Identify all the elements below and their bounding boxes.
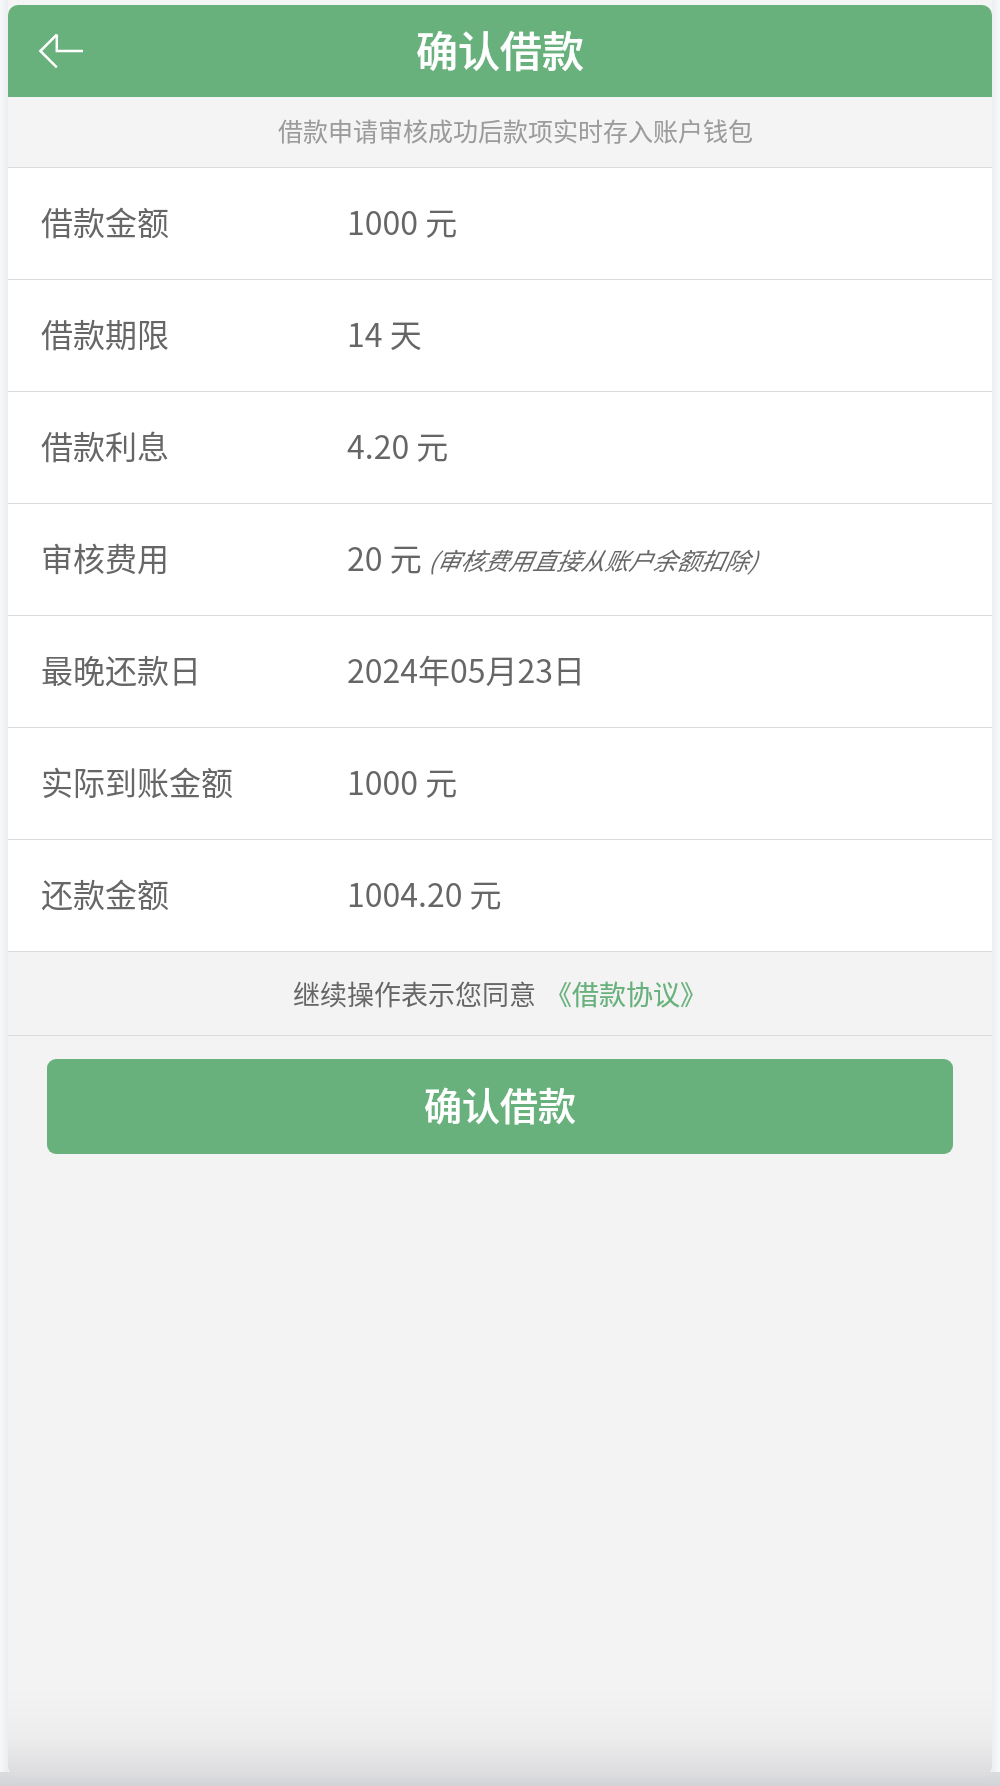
staticText: 继续操作表示您同意 [293,974,536,1013]
staticText: 1000 元 [347,758,458,804]
button[interactable]: 借款利息 [8,392,992,503]
button[interactable]: 实际到账金额 [8,728,992,839]
button[interactable]: 还款金额 [8,840,992,951]
staticText: 1004.20 元 [347,870,502,916]
staticText: 确认借款 [416,18,585,79]
button[interactable]: 审核费用 [8,504,992,615]
staticText: 最晚还款日 [41,646,202,692]
staticText: 确认借款 [424,1076,577,1131]
staticText: 实际到账金额 [41,758,234,804]
staticText: 借款利息 [41,422,170,468]
button[interactable]: Back [8,5,100,97]
staticText: 4.20 元 [347,422,449,468]
staticText: 借款申请审核成功后款项实时存入账户钱包 [278,112,754,148]
staticText: (审核费用直接从账户余额扣除) [428,542,757,577]
button[interactable]: 最晚还款日 [8,616,992,727]
staticText: 1000 元 [347,198,458,244]
button[interactable]: 确认借款 [47,1059,953,1154]
staticText: 借款金额 [41,198,170,244]
button[interactable]: 借款期限 [8,280,992,391]
staticText: 借款期限 [41,310,170,356]
staticText: 《借款协议》 [545,974,707,1013]
staticText: 2024年05月23日 [347,646,586,692]
staticText: 审核费用 [41,534,170,580]
button[interactable]: 借款金额 [8,168,992,279]
staticText: 14 天 [347,310,422,356]
button[interactable]: 《借款协议》 [545,974,707,1013]
staticText: 20 元 [347,534,422,580]
staticText: 还款金额 [41,870,170,916]
